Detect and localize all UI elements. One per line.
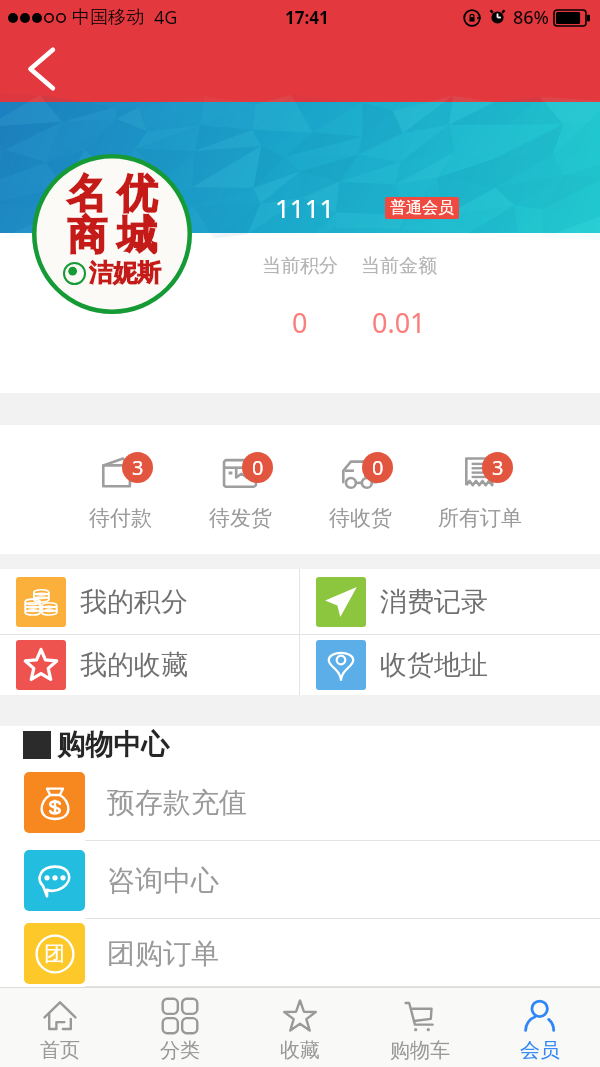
button[interactable]: 我的收藏 <box>0 635 299 695</box>
button[interactable]: Back <box>0 35 84 102</box>
staticText: 购物中心 <box>57 727 169 762</box>
staticText: 收藏 <box>280 1038 320 1063</box>
staticText: 0 <box>292 304 308 341</box>
button[interactable]: 会员 <box>480 988 600 1067</box>
staticText: 消费记录 <box>380 585 488 619</box>
staticText: 0 <box>252 454 264 481</box>
button[interactable]: 预存款充值 <box>0 763 600 841</box>
button[interactable]: 收藏 <box>240 988 360 1067</box>
staticText: 当前金额 <box>361 254 437 278</box>
staticText: 团 <box>44 941 65 967</box>
button[interactable]: 0 <box>300 425 420 554</box>
staticText: 普通会员 <box>390 198 454 218</box>
staticText: 17:41 <box>285 6 329 29</box>
staticText: 待付款 <box>89 505 152 531</box>
button[interactable]: 团 <box>0 919 600 987</box>
button[interactable]: 3 <box>60 425 180 554</box>
staticText: 当前积分 <box>262 254 338 278</box>
staticText: 我的收藏 <box>80 648 188 682</box>
button[interactable]: 收货地址 <box>300 635 600 695</box>
staticText: 0.01 <box>372 304 426 341</box>
staticText: 3 <box>492 454 504 481</box>
staticText: 城 <box>117 210 157 260</box>
staticText: 咨询中心 <box>107 863 219 898</box>
staticText: 所有订单 <box>438 505 522 531</box>
button[interactable]: 购物车 <box>360 988 480 1067</box>
button[interactable]: 首页 <box>0 988 120 1067</box>
staticText: 待收货 <box>329 505 392 531</box>
staticText: 首页 <box>40 1038 80 1063</box>
staticText: 中国移动 <box>72 6 144 29</box>
staticText: 购物车 <box>390 1038 450 1063</box>
staticText: 1111 <box>275 190 335 225</box>
staticText: 0 <box>372 454 384 481</box>
staticText: 我的积分 <box>80 585 188 619</box>
staticText: 收货地址 <box>380 648 488 682</box>
staticText: 分类 <box>160 1038 200 1063</box>
staticText: 洁妮斯 <box>89 258 161 288</box>
button[interactable]: 0 <box>180 425 300 554</box>
staticText: 预存款充值 <box>107 785 247 820</box>
staticText: 优 <box>117 168 157 218</box>
staticText: 4G <box>154 5 178 30</box>
staticText: 会员 <box>520 1038 560 1063</box>
staticText: 3 <box>132 454 144 481</box>
button[interactable]: 消费记录 <box>300 569 600 634</box>
button[interactable]: 分类 <box>120 988 240 1067</box>
staticText: 名 <box>67 168 107 218</box>
button[interactable]: 咨询中心 <box>0 841 600 919</box>
button[interactable]: 3 <box>420 425 540 554</box>
staticText: 团购订单 <box>107 936 219 971</box>
staticText: 86% <box>513 5 549 30</box>
button[interactable]: 我的积分 <box>0 569 299 634</box>
staticText: 商 <box>67 210 107 260</box>
staticText: 待发货 <box>209 505 272 531</box>
